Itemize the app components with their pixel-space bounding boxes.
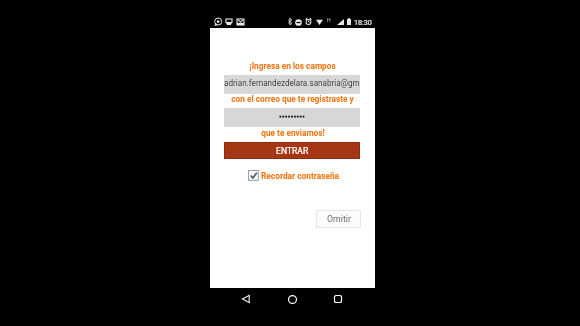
- staticText: ¡Ingresa en los campos: [249, 61, 336, 71]
- staticText: H: [327, 17, 331, 23]
- staticText: adrian.fernandezdelara.sanabria@gm: [224, 78, 360, 88]
- button[interactable]: ENTRAR: [224, 142, 360, 159]
- staticText: 18:30: [354, 18, 372, 26]
- staticText: con el correo que te registraste y: [231, 94, 354, 104]
- button[interactable]: Back: [237, 290, 255, 308]
- button[interactable]: Recordar contraseña: [246, 168, 341, 183]
- button[interactable]: [224, 108, 360, 127]
- staticText: que te enviamos!: [261, 128, 325, 138]
- button[interactable]: Omitir: [316, 210, 361, 228]
- button[interactable]: Recent apps: [329, 290, 347, 308]
- staticText: Recordar contraseña: [261, 171, 340, 181]
- button[interactable]: adrian.fernandezdelara.sanabria@gm: [224, 75, 360, 94]
- staticText: Omitir: [327, 214, 351, 224]
- button[interactable]: Home: [283, 290, 301, 308]
- staticText: ENTRAR: [276, 146, 309, 156]
